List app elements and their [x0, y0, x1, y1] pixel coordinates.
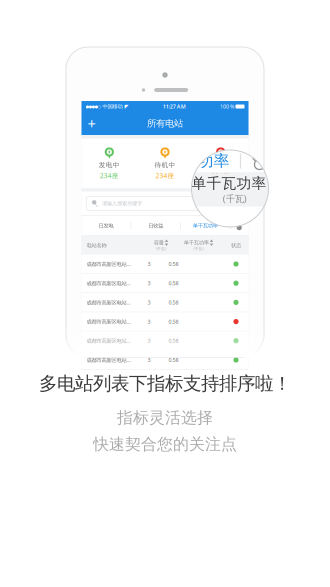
staticText: 发电中 [99, 161, 120, 169]
button[interactable]: 单千瓦功率 [181, 222, 230, 229]
staticText: 234座 [100, 171, 119, 180]
staticText: 100 % [220, 103, 234, 110]
staticText: 单千瓦功率 [184, 239, 209, 246]
staticText: 待机中 [154, 161, 175, 169]
button[interactable]: 日收益 [131, 222, 180, 229]
staticText: 状态 [231, 242, 241, 249]
staticText: 容量 [154, 239, 164, 246]
staticText: 日发电 [98, 222, 113, 229]
button[interactable]: 日发电 [81, 222, 131, 229]
staticText: (千瓦) [156, 246, 166, 251]
staticText: ●●●●○ [85, 104, 100, 109]
staticText: 3 [147, 280, 150, 287]
staticText: 成都市高新区电站… [86, 356, 130, 364]
staticText: + [87, 114, 95, 133]
staticText: (千瓦) [223, 192, 247, 205]
staticText: 功率 [197, 151, 229, 171]
staticText: 指标灵活选择 [117, 408, 213, 428]
staticText: 多电站列表下指标支持排序啦！ [39, 372, 291, 395]
staticText: 3 [147, 337, 150, 344]
staticText: 0.58 [168, 318, 178, 325]
staticText: 0.58 [168, 337, 178, 344]
button[interactable]: Add station [84, 116, 98, 130]
staticText: 单千瓦功率 [191, 174, 266, 192]
staticText: ◤ [124, 103, 128, 110]
staticText: 电站名称 [86, 242, 106, 249]
staticText: 所有电站 [147, 118, 183, 129]
staticText: 成都市高新区电站… [86, 299, 130, 306]
staticText: 0.58 [168, 356, 178, 364]
staticText: 0.58 [168, 280, 178, 287]
staticText: 快速契合您的关注点 [93, 434, 237, 454]
staticText: 成都市高新区电站… [86, 260, 130, 268]
staticText: 单千瓦功率 [193, 222, 218, 229]
staticText: 停机中 [210, 161, 231, 169]
staticText: 3 [147, 260, 150, 268]
staticText: 0.58 [168, 260, 178, 268]
button[interactable]: Sort options [230, 217, 248, 235]
staticText: 请输入搜索关键字 [102, 200, 142, 207]
staticText: 3 [147, 299, 150, 306]
button[interactable]: 待机中 [137, 147, 193, 180]
staticText: 0.58 [168, 299, 178, 306]
staticText: 日收益 [148, 222, 163, 229]
staticText: (千瓦) [193, 246, 203, 251]
staticText: 成都市高新区电站… [86, 337, 130, 344]
staticText: 234座 [155, 171, 174, 180]
staticText: 成都市高新区电站… [86, 318, 130, 325]
staticText: 3 [147, 318, 150, 325]
staticText: 11:27 AM [163, 103, 186, 110]
button[interactable]: 停机中 [193, 147, 248, 180]
staticText: 中国移动 [100, 103, 124, 110]
button[interactable]: 发电中 [81, 147, 137, 180]
staticText: 3 [147, 356, 150, 364]
staticText: 成都市高新区电站… [86, 280, 130, 287]
staticText: 234座 [211, 171, 230, 180]
